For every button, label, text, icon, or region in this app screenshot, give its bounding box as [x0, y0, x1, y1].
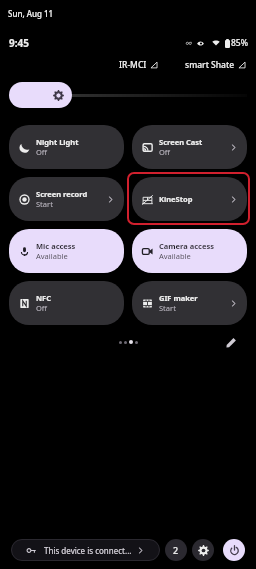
staticText: Sun, Aug 11	[8, 8, 54, 19]
button[interactable]: Settings	[192, 539, 214, 561]
staticText: Start	[36, 199, 53, 209]
staticText: Mic access	[36, 241, 76, 251]
staticText: smart Shate	[185, 59, 235, 71]
button[interactable]: Brightness	[9, 82, 72, 108]
button[interactable]: This device is connect...	[11, 539, 160, 561]
staticText: Off	[159, 147, 171, 157]
staticText: Screen Cast	[159, 137, 203, 147]
button[interactable]: Camera access	[132, 229, 247, 273]
staticText: GIF maker	[159, 293, 198, 303]
staticText: Off	[36, 147, 48, 157]
staticText: Available	[36, 251, 68, 261]
staticText: 85%	[231, 37, 248, 49]
staticText: IR-MCI	[119, 59, 147, 71]
button[interactable]: Power	[223, 539, 245, 561]
staticText: Start	[159, 303, 176, 313]
staticText: Screen record	[36, 189, 88, 199]
staticText: This device is connect...	[44, 545, 132, 556]
button[interactable]: Night Light	[9, 125, 124, 169]
button[interactable]: Edit tiles	[224, 335, 238, 349]
button[interactable]: Mic access	[9, 229, 124, 273]
button[interactable]: Screen Cast	[132, 125, 247, 169]
staticText: Night Light	[36, 137, 79, 147]
staticText: Available	[159, 251, 191, 261]
button[interactable]: 2	[165, 539, 187, 561]
staticText: KineStop	[159, 194, 193, 204]
staticText: 9:45	[9, 36, 29, 50]
button[interactable]: KineStop	[132, 177, 247, 221]
button[interactable]: Screen record	[9, 177, 124, 221]
staticText: Camera access	[159, 241, 214, 251]
staticText: 2	[173, 544, 179, 556]
staticText: NFC	[36, 293, 52, 303]
button[interactable]: GIF maker	[132, 281, 247, 325]
button[interactable]: NFC	[9, 281, 124, 325]
staticText: Off	[36, 303, 48, 313]
